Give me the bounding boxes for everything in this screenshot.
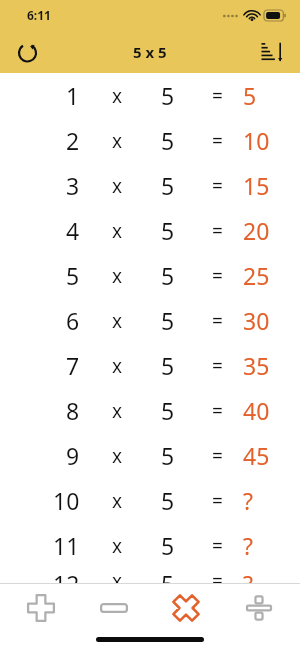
staticText: 5 <box>161 170 175 201</box>
staticText: 3 <box>66 170 80 201</box>
staticText: x <box>112 83 123 109</box>
button[interactable]: 11 <box>0 523 300 568</box>
staticText: x <box>112 443 123 469</box>
staticText: 8 <box>66 395 80 426</box>
button[interactable]: 1 <box>0 73 300 118</box>
button[interactable]: 12 <box>0 568 300 583</box>
button[interactable]: Reload <box>8 33 46 71</box>
button[interactable]: 10 <box>0 478 300 523</box>
staticText: = <box>212 308 223 334</box>
button[interactable]: 9 <box>0 433 300 478</box>
button[interactable]: Division <box>228 585 290 631</box>
staticText: = <box>212 488 223 514</box>
button[interactable]: Subtraction <box>83 585 145 631</box>
staticText: 35 <box>243 350 270 381</box>
staticText: = <box>212 533 223 559</box>
staticText: x <box>112 353 123 379</box>
staticText: 5 x 5 <box>133 42 167 62</box>
staticText: ? <box>243 568 253 583</box>
staticText: 4 <box>66 215 80 246</box>
staticText: = <box>212 83 223 109</box>
staticText: = <box>212 398 223 424</box>
staticText: x <box>112 568 123 583</box>
staticText: 45 <box>243 440 270 471</box>
staticText: 2 <box>66 125 80 156</box>
staticText: 10 <box>53 485 80 516</box>
staticText: x <box>112 488 123 514</box>
staticText: x <box>112 128 123 154</box>
staticText: 1 <box>66 80 80 111</box>
staticText: 20 <box>243 215 270 246</box>
staticText: 15 <box>243 170 270 201</box>
staticText: ? <box>243 485 253 516</box>
button[interactable]: Multiplication <box>155 585 217 631</box>
staticText: 9 <box>66 440 80 471</box>
staticText: 5 <box>161 395 175 426</box>
staticText: = <box>212 443 223 469</box>
button[interactable]: 3 <box>0 163 300 208</box>
staticText: x <box>112 308 123 334</box>
staticText: 7 <box>66 350 80 381</box>
button[interactable]: 4 <box>0 208 300 253</box>
staticText: x <box>112 263 123 289</box>
staticText: x <box>112 533 123 559</box>
staticText: 5 <box>66 260 80 291</box>
staticText: 5 <box>161 305 175 336</box>
staticText: x <box>112 173 123 199</box>
staticText: = <box>212 218 223 244</box>
staticText: 5 <box>161 215 175 246</box>
staticText: 5 <box>161 260 175 291</box>
staticText: 5 <box>161 350 175 381</box>
staticText: 5 <box>243 80 257 111</box>
staticText: 12 <box>53 568 80 583</box>
staticText: = <box>212 353 223 379</box>
staticText: 5 <box>161 80 175 111</box>
staticText: = <box>212 263 223 289</box>
button[interactable]: Addition <box>10 585 72 631</box>
staticText: ? <box>243 530 253 561</box>
staticText: 5 <box>161 530 175 561</box>
staticText: x <box>112 398 123 424</box>
staticText: 11 <box>53 530 80 561</box>
button[interactable]: 6 <box>0 298 300 343</box>
staticText: x <box>112 218 123 244</box>
staticText: 5 <box>161 125 175 156</box>
button[interactable]: 8 <box>0 388 300 433</box>
staticText: 5 <box>161 485 175 516</box>
staticText: = <box>212 568 223 583</box>
staticText: 40 <box>243 395 270 426</box>
staticText: 6 <box>66 305 80 336</box>
staticText: = <box>212 173 223 199</box>
staticText: 6:11 <box>27 7 51 23</box>
staticText: 5 <box>161 568 175 583</box>
button[interactable]: Sort <box>254 33 292 71</box>
staticText: 5 <box>161 440 175 471</box>
button[interactable]: 2 <box>0 118 300 163</box>
button[interactable]: 5 <box>0 253 300 298</box>
button[interactable]: 7 <box>0 343 300 388</box>
staticText: 10 <box>243 125 270 156</box>
staticText: 25 <box>243 260 270 291</box>
staticText: 30 <box>243 305 270 336</box>
staticText: = <box>212 128 223 154</box>
